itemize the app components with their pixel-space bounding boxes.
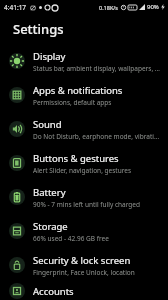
staticText: Display [33,50,66,63]
staticText: Battery [33,186,66,199]
staticText: 0.18K/s [99,4,118,11]
staticText: 66% used - 42.96 GB free [33,234,109,243]
other: Storage [9,223,25,239]
other: Buttons and gestures [9,155,25,171]
button[interactable]: Accounts [0,282,168,300]
button[interactable]: Buttons and gestures [0,146,168,180]
staticText: Buttons & gestures [33,152,119,165]
other: Security and lock screen [9,257,25,273]
staticText: Do Not Disturb, earphone mode, vibration [33,132,160,141]
other: Display [9,53,25,69]
staticText: 90% [147,3,159,11]
button[interactable]: Display [0,44,168,78]
staticText: Permissions, default apps [33,98,112,107]
button[interactable]: Sound [0,112,168,146]
other: Accounts [9,283,25,299]
staticText: Settings [13,20,64,38]
staticText: 90% - 7 mins left until fully charged [33,200,141,209]
staticText: Fingerprint, Face Unlock, location [33,268,135,277]
staticText: Security & lock screen [33,254,131,267]
button[interactable]: Apps and notifications [0,78,168,112]
staticText: Accounts [33,285,74,298]
staticText: Alert Slider, navigation, gestures [33,166,132,175]
other: Apps and notifications [9,87,25,103]
button[interactable]: Storage [0,214,168,248]
staticText: Sound [33,118,62,131]
staticText: Status bar, ambient display, wallpapers,… [33,64,160,73]
other: Battery [9,189,25,205]
other: Sound [9,121,25,137]
button[interactable]: Battery [0,180,168,214]
staticText: 4:41:17 [4,3,27,12]
button[interactable]: Security and lock screen [0,248,168,282]
staticText: Apps & notifications [33,84,123,97]
staticText: Storage [33,220,68,233]
